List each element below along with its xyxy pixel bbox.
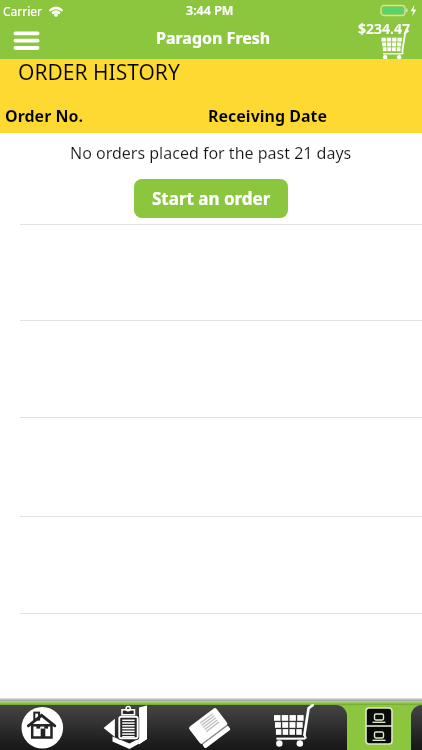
button[interactable] bbox=[375, 34, 417, 59]
staticText: Order No. bbox=[5, 105, 83, 127]
staticText: Receiving Date bbox=[208, 105, 328, 127]
staticText: Paragon Fresh bbox=[156, 27, 271, 49]
staticText: Carrier bbox=[3, 3, 43, 19]
button[interactable]: Start an order bbox=[134, 179, 288, 218]
button[interactable] bbox=[168, 705, 252, 750]
button[interactable] bbox=[8, 26, 48, 56]
button[interactable] bbox=[0, 705, 84, 750]
staticText: Start an order bbox=[152, 187, 271, 210]
staticText: No orders placed for the past 21 days bbox=[70, 142, 352, 164]
button[interactable] bbox=[336, 705, 422, 750]
staticText: ORDER HISTORY bbox=[18, 58, 180, 87]
staticText: 3:44 PM bbox=[186, 2, 234, 19]
staticText: $234.47 bbox=[358, 19, 410, 38]
button[interactable] bbox=[84, 705, 168, 750]
button[interactable] bbox=[252, 705, 336, 750]
